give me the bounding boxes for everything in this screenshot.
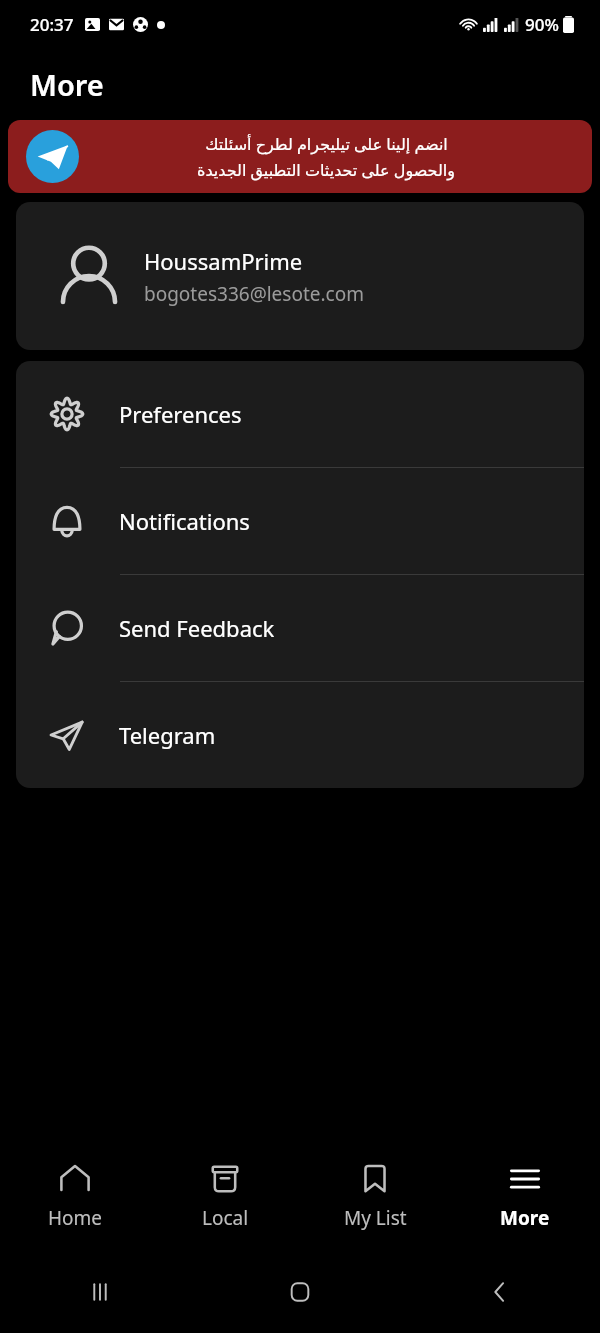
staticText: Send Feedback (119, 613, 275, 643)
staticText: Notifications (119, 506, 250, 536)
button[interactable]: More (450, 1142, 600, 1250)
staticText: bogotes336@lesote.com (144, 281, 364, 307)
staticText: 90% (525, 13, 559, 36)
staticText: والحصول على تحديثات التطبيق الجديدة (197, 159, 455, 181)
staticText: انضم إلينا على تيليجرام لطرح أسئلتك (205, 133, 448, 155)
button[interactable]: My List (300, 1142, 450, 1250)
staticText: Preferences (119, 399, 242, 429)
staticText: My List (344, 1205, 407, 1231)
staticText: HoussamPrime (144, 246, 303, 276)
staticText: More (500, 1205, 550, 1231)
button[interactable]: Preferences (16, 361, 584, 467)
button[interactable]: انضم إلينا على تيليجرام لطرح أسئلتك (8, 120, 592, 193)
button[interactable]: HoussamPrime (16, 202, 584, 350)
button[interactable]: Notifications (16, 468, 584, 574)
staticText: Telegram (119, 720, 216, 750)
button[interactable]: Home (0, 1142, 150, 1250)
staticText: More (30, 65, 104, 104)
button[interactable]: Home (200, 1250, 400, 1333)
staticText: Local (202, 1205, 249, 1231)
button[interactable]: Telegram (16, 682, 584, 788)
staticText: 20:37 (30, 13, 74, 36)
button[interactable]: Back (400, 1250, 600, 1333)
button[interactable]: Send Feedback (16, 575, 584, 681)
staticText: Home (48, 1205, 103, 1231)
button[interactable]: Recent apps (0, 1250, 200, 1333)
button[interactable]: Local (150, 1142, 300, 1250)
